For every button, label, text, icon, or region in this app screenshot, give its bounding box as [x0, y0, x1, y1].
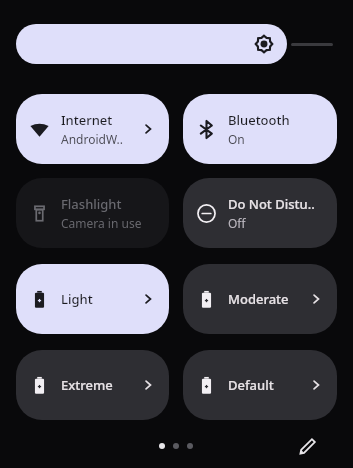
staticText: Camera in use	[61, 215, 142, 231]
button[interactable]: Extreme	[16, 350, 169, 420]
button[interactable]: Brightness	[16, 24, 337, 64]
button[interactable]: Do Not Distu..	[183, 178, 337, 248]
staticText: Do Not Distu..	[228, 195, 315, 213]
staticText: Moderate	[228, 290, 289, 308]
staticText: On	[228, 131, 245, 147]
staticText: Bluetooth	[228, 111, 290, 129]
button[interactable]: Light	[16, 264, 169, 334]
staticText: Extreme	[61, 376, 113, 394]
staticText: Off	[228, 215, 246, 231]
button[interactable]: Internet	[16, 94, 169, 164]
button[interactable]: Edit tiles	[293, 431, 323, 461]
staticText: Light	[61, 290, 93, 308]
button[interactable]: Default	[183, 350, 337, 420]
button[interactable]: Bluetooth	[183, 94, 337, 164]
staticText: Flashlight	[61, 195, 122, 213]
staticText: Default	[228, 376, 274, 394]
staticText: AndroidW..	[61, 131, 123, 147]
staticText: Internet	[61, 111, 113, 129]
button[interactable]: Moderate	[183, 264, 337, 334]
button[interactable]: Flashlight	[16, 178, 169, 248]
